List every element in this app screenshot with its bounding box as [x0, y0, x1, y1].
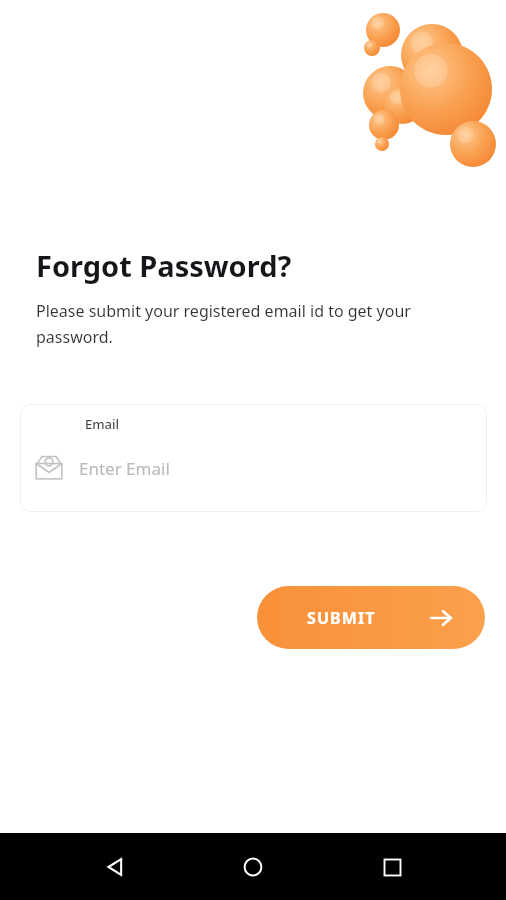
button[interactable]: Email [20, 404, 487, 512]
staticText: Email [85, 415, 120, 433]
button[interactable]: SUBMIT [257, 586, 485, 649]
staticText: Forgot Password? [36, 246, 292, 285]
other: Submit [428, 605, 454, 631]
button[interactable]: Home [229, 843, 277, 891]
staticText: Enter Email [79, 457, 170, 480]
staticText: Please submit your registered email id t… [36, 300, 478, 348]
button[interactable]: Recent apps [368, 843, 416, 891]
staticText: SUBMIT [307, 607, 376, 629]
button[interactable]: Back [91, 843, 139, 891]
